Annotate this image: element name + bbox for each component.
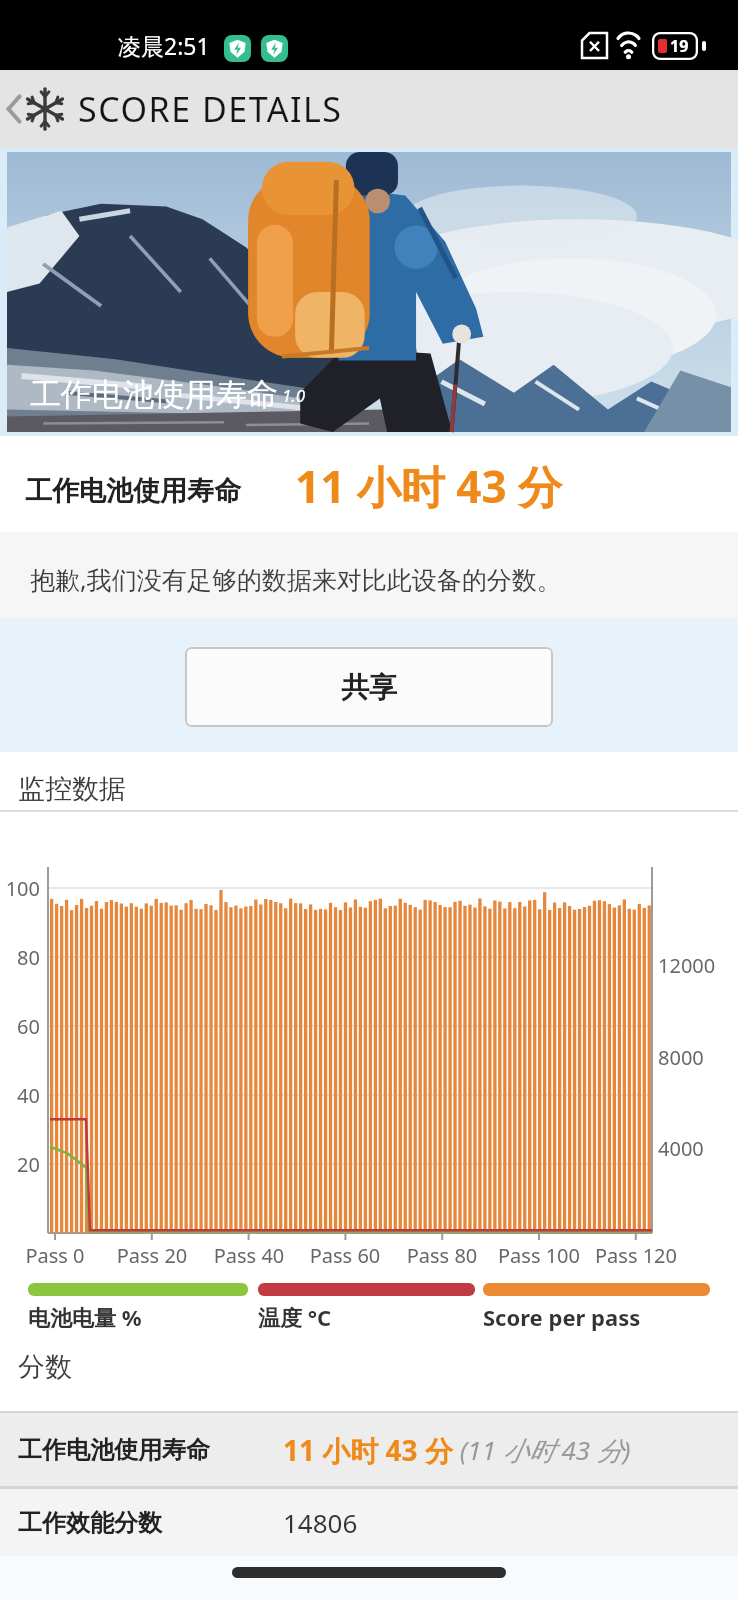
staticText: 电池电量 %	[28, 1302, 142, 1332]
staticText: 40	[0, 1082, 40, 1109]
button[interactable]: 工作电池使用寿命	[0, 1413, 738, 1486]
staticText: 60	[0, 1013, 40, 1040]
staticText: 凌晨2:51	[118, 30, 210, 61]
staticText: Pass 100	[494, 1242, 584, 1269]
staticText: 工作电池使用寿命	[18, 1435, 268, 1465]
staticText: SCORE DETAILS	[78, 86, 343, 132]
staticText: 80	[0, 944, 40, 971]
staticText: 19	[670, 35, 689, 57]
staticText: 分数	[18, 1350, 72, 1384]
staticText: 14806	[283, 1505, 358, 1540]
staticText: Pass 60	[300, 1242, 390, 1269]
staticText: 4000	[658, 1135, 704, 1162]
button[interactable]: SCORE DETAILS	[0, 70, 343, 148]
staticText: (11 小时 43 分)	[453, 1432, 631, 1468]
staticText: 工作电池使用寿命	[30, 375, 278, 414]
staticText: 工作电池使用寿命	[25, 474, 241, 508]
staticText: 12000	[658, 952, 716, 979]
staticText: Pass 0	[10, 1242, 100, 1269]
staticText: 抱歉,我们没有足够的数据来对比此设备的分数。	[30, 562, 562, 596]
staticText: 11 小时 43 分	[283, 1431, 453, 1469]
button[interactable]: 工作效能分数	[0, 1489, 738, 1556]
staticText: 温度 °C	[258, 1302, 332, 1332]
staticText: 共享	[341, 670, 397, 705]
staticText: 监控数据	[18, 772, 126, 806]
staticText: Pass 80	[397, 1242, 487, 1269]
staticText: Pass 40	[204, 1242, 294, 1269]
staticText: 8000	[658, 1044, 704, 1071]
staticText: 工作效能分数	[18, 1508, 283, 1538]
staticText: 100	[0, 875, 40, 902]
staticText: Score per pass	[483, 1302, 641, 1332]
button[interactable]: 共享	[185, 647, 553, 727]
staticText: 20	[0, 1151, 40, 1178]
staticText: Pass 20	[107, 1242, 197, 1269]
staticText: 1.0	[282, 384, 306, 407]
staticText: 11 小时 43 分	[295, 456, 562, 516]
staticText: Pass 120	[591, 1242, 681, 1269]
